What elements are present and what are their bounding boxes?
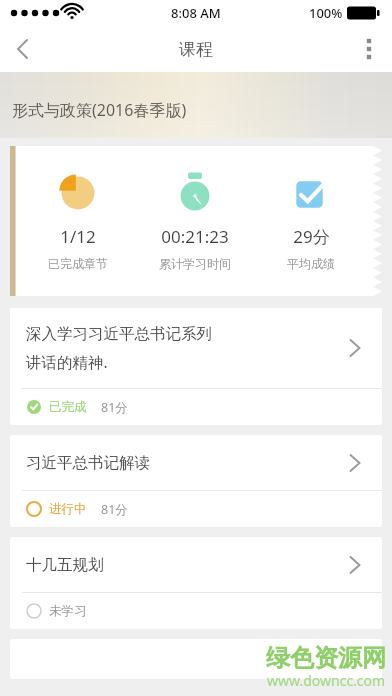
staticText: 绿色资源网 [266, 643, 386, 673]
button[interactable]: Back [0, 26, 46, 72]
staticText: 00:21:23 [161, 225, 229, 248]
staticText: 8:08 AM [171, 4, 221, 22]
button[interactable]: 1/12 [10, 146, 382, 296]
staticText: 81分 [101, 399, 128, 416]
button[interactable]: 深入学习习近平总书记系列 [10, 308, 382, 425]
staticText: 深入学习习近平总书记系列 [26, 324, 212, 344]
staticText: 100% [309, 4, 343, 22]
button[interactable]: More options [346, 26, 392, 72]
staticText: www.downcc.com [267, 671, 386, 690]
staticText: 十几五规划 [26, 555, 104, 575]
staticText: 累计学习时间 [159, 256, 231, 271]
button[interactable]: 十几五规划 [10, 537, 382, 629]
staticText: 已完成章节 [48, 256, 108, 271]
staticText: 1/12 [60, 225, 96, 248]
button[interactable]: 习近平总书记解读 [10, 435, 382, 527]
staticText: 29分 [293, 225, 330, 248]
staticText: 已完成 [49, 399, 87, 415]
staticText: 课程 [179, 39, 213, 60]
staticText: 平均成绩 [287, 256, 335, 271]
staticText: 讲话的精神. [26, 351, 108, 372]
staticText: 未学习 [49, 603, 87, 619]
staticText: 形式与政策(2016春季版) [12, 99, 187, 121]
staticText: 习近平总书记解读 [26, 453, 150, 473]
staticText: 进行中 [49, 501, 87, 517]
staticText: 81分 [101, 501, 128, 518]
